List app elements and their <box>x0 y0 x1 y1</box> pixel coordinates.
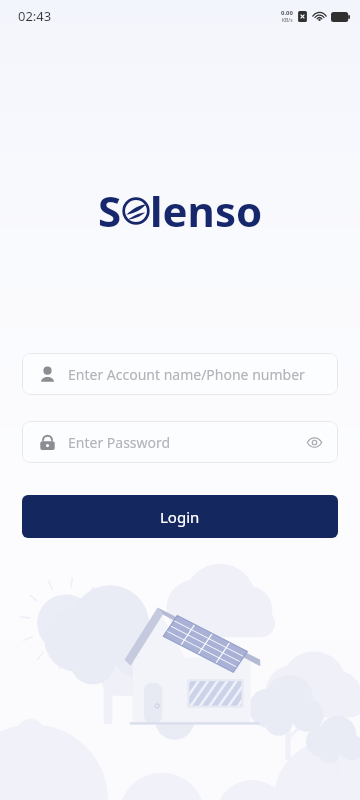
button[interactable]: Show password <box>304 432 324 452</box>
staticText: lenso <box>150 182 263 239</box>
button[interactable]: Enter Password <box>22 421 338 463</box>
staticText: Enter Account name/Phone number <box>68 365 324 384</box>
staticText: KB/s <box>282 17 293 24</box>
staticText: 02:43 <box>18 7 52 25</box>
staticText: Login <box>160 507 200 527</box>
staticText: Enter Password <box>68 433 304 452</box>
staticText: 0.00 <box>281 9 293 17</box>
staticText: S <box>98 182 122 239</box>
button[interactable]: Login <box>22 495 338 538</box>
button[interactable]: Enter Account name/Phone number <box>22 353 338 395</box>
